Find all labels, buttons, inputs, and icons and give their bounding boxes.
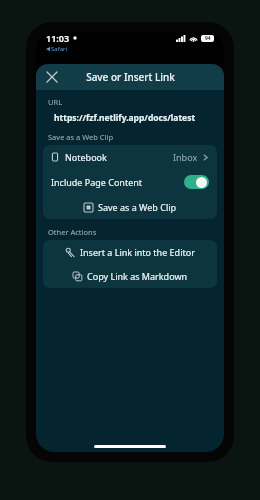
staticText: Save as a Web Clip [98, 201, 177, 213]
staticText: Notebook [65, 151, 107, 163]
staticText: Save or Insert Link [86, 70, 175, 84]
staticText: Other Actions [48, 227, 97, 237]
button[interactable]: Close [41, 66, 63, 88]
staticText: URL [48, 97, 63, 107]
button[interactable]: Save as a Web Clip [43, 195, 217, 219]
button[interactable]: Notebook [43, 145, 217, 169]
staticText: https://fzf.netlify.app/docs/latest [54, 112, 196, 124]
button[interactable]: Include Page Content [43, 169, 217, 195]
staticText: Save as a Web Clip [48, 132, 114, 142]
staticText: Insert a Link into the Editor [80, 246, 195, 258]
staticText: 11:03 [46, 32, 70, 44]
staticText: Include Page Content [51, 176, 143, 188]
button[interactable]: Copy Link as Markdown [43, 264, 217, 288]
staticText: Inbox [173, 151, 198, 163]
staticText: 94 [205, 35, 211, 42]
staticText: Copy Link as Markdown [87, 270, 188, 282]
staticText: Safari [51, 45, 68, 53]
button[interactable]: Insert a Link into the Editor [43, 240, 217, 264]
